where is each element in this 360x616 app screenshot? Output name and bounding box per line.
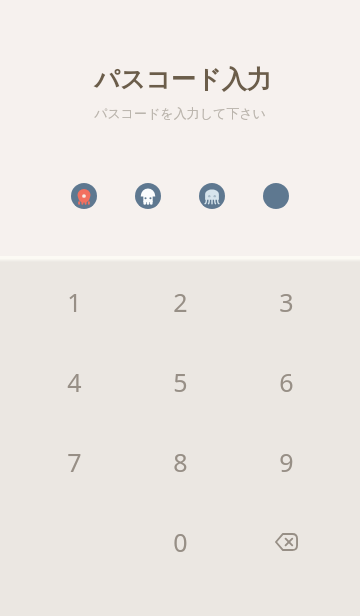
staticText: 4 [67,365,82,399]
staticText: 9 [279,445,294,479]
button[interactable]: 0 [127,502,233,582]
button[interactable]: 6 [233,342,339,422]
button[interactable]: 1 [21,262,127,342]
staticText: 8 [173,445,188,479]
staticText: 6 [279,365,294,399]
button[interactable]: 8 [127,422,233,502]
staticText: パスコードを入力して下さい [94,105,266,121]
button[interactable]: 7 [21,422,127,502]
button[interactable]: 4 [21,342,127,422]
staticText: 3 [279,285,294,319]
staticText: 5 [173,365,188,399]
button[interactable]: Delete [233,502,339,582]
staticText: 1 [67,285,82,319]
button[interactable]: 5 [127,342,233,422]
staticText: 0 [173,525,188,559]
button[interactable]: 2 [127,262,233,342]
staticText: 2 [173,285,188,319]
button[interactable]: 9 [233,422,339,502]
staticText: 7 [67,445,82,479]
button[interactable]: 3 [233,262,339,342]
staticText: パスコード入力 [94,64,272,95]
